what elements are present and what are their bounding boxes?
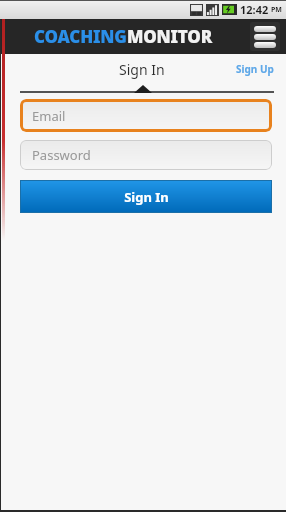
staticText: 12:42: [240, 2, 269, 17]
staticText: Sign In: [124, 188, 169, 206]
button[interactable]: Sign In: [20, 180, 272, 213]
staticText: Email: [32, 107, 66, 125]
staticText: Password: [32, 146, 91, 164]
staticText: COACHING: [34, 25, 127, 48]
staticText: MONITOR: [127, 25, 213, 48]
button[interactable]: Sign Up: [228, 61, 286, 77]
button[interactable]: Email: [20, 99, 272, 132]
staticText: PM: [271, 5, 282, 15]
button[interactable]: Password: [20, 140, 272, 170]
button[interactable]: Sign In: [113, 59, 171, 80]
button[interactable]: Menu: [250, 22, 280, 51]
